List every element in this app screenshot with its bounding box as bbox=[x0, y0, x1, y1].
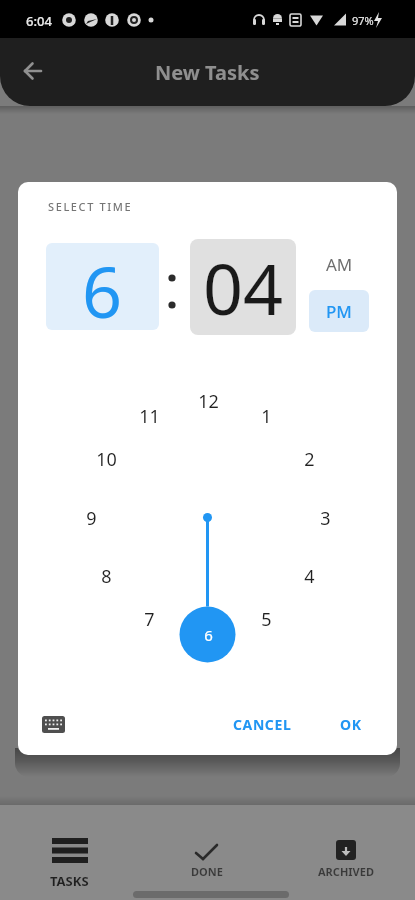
staticText: 8 bbox=[101, 564, 112, 589]
button[interactable]: CANCEL bbox=[216, 706, 308, 742]
staticText: 11 bbox=[139, 404, 160, 429]
staticText: 2 bbox=[304, 447, 315, 472]
button[interactable]: PM bbox=[309, 290, 369, 332]
staticText: New Tasks bbox=[155, 59, 260, 86]
staticText: ARCHIVED bbox=[318, 864, 374, 879]
button[interactable]: OK bbox=[326, 706, 376, 742]
staticText: CANCEL bbox=[233, 715, 292, 734]
staticText: OK bbox=[340, 715, 362, 734]
staticText: TASKS bbox=[50, 872, 89, 890]
staticText: 6 bbox=[204, 625, 213, 645]
button[interactable]: AM bbox=[309, 244, 369, 284]
staticText: DONE bbox=[191, 864, 223, 879]
button[interactable]: 6 bbox=[46, 243, 159, 330]
staticText: SELECT TIME bbox=[48, 199, 133, 214]
staticText: 9 bbox=[86, 506, 97, 531]
staticText: 3 bbox=[320, 506, 331, 531]
staticText: 04 bbox=[203, 240, 284, 335]
staticText: 5 bbox=[261, 607, 272, 632]
button[interactable]: 04 bbox=[190, 239, 296, 335]
button[interactable] bbox=[14, 53, 52, 91]
button[interactable]: DONE bbox=[167, 820, 247, 894]
staticText: 97% bbox=[352, 13, 374, 28]
staticText: PM bbox=[326, 300, 352, 323]
staticText: 6:04 bbox=[26, 12, 52, 30]
staticText: 10 bbox=[96, 447, 117, 472]
staticText: AM bbox=[326, 253, 353, 276]
staticText: 1 bbox=[261, 404, 272, 429]
staticText: 12 bbox=[198, 389, 219, 414]
staticText: 4 bbox=[304, 564, 315, 589]
button[interactable]: ARCHIVED bbox=[306, 820, 386, 894]
button[interactable] bbox=[30, 703, 76, 745]
staticText: 6 bbox=[82, 243, 123, 330]
staticText: 7 bbox=[144, 607, 155, 632]
button[interactable]: TASKS bbox=[29, 820, 109, 894]
